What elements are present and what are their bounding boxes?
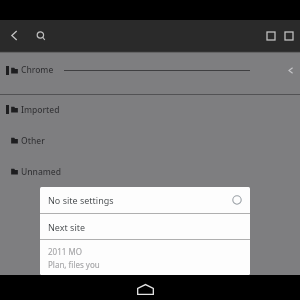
staticText: 2011 MO xyxy=(48,246,82,257)
button[interactable]: More options xyxy=(280,23,298,49)
button[interactable]: Other xyxy=(0,125,300,156)
button[interactable]: 2011 MO xyxy=(40,240,250,275)
button[interactable]: No site settings xyxy=(40,187,250,213)
staticText: Plan, files you xyxy=(48,259,100,270)
button[interactable]: Home xyxy=(133,277,158,300)
button[interactable]: Back xyxy=(2,23,27,48)
staticText: Other xyxy=(21,135,45,147)
button[interactable]: Unnamed xyxy=(0,156,300,187)
staticText: Next site xyxy=(48,221,86,233)
button[interactable]: Tabs xyxy=(262,23,280,49)
button[interactable]: Imported xyxy=(0,94,300,125)
button[interactable]: Collapse xyxy=(280,60,300,80)
staticText: Unnamed xyxy=(21,166,61,178)
button[interactable]: Chrome xyxy=(0,51,300,89)
staticText: Imported xyxy=(21,104,60,116)
button[interactable]: Search xyxy=(27,22,55,50)
button[interactable]: Next site xyxy=(40,214,250,239)
staticText: No site settings xyxy=(48,194,114,206)
staticText: Chrome xyxy=(21,64,54,76)
